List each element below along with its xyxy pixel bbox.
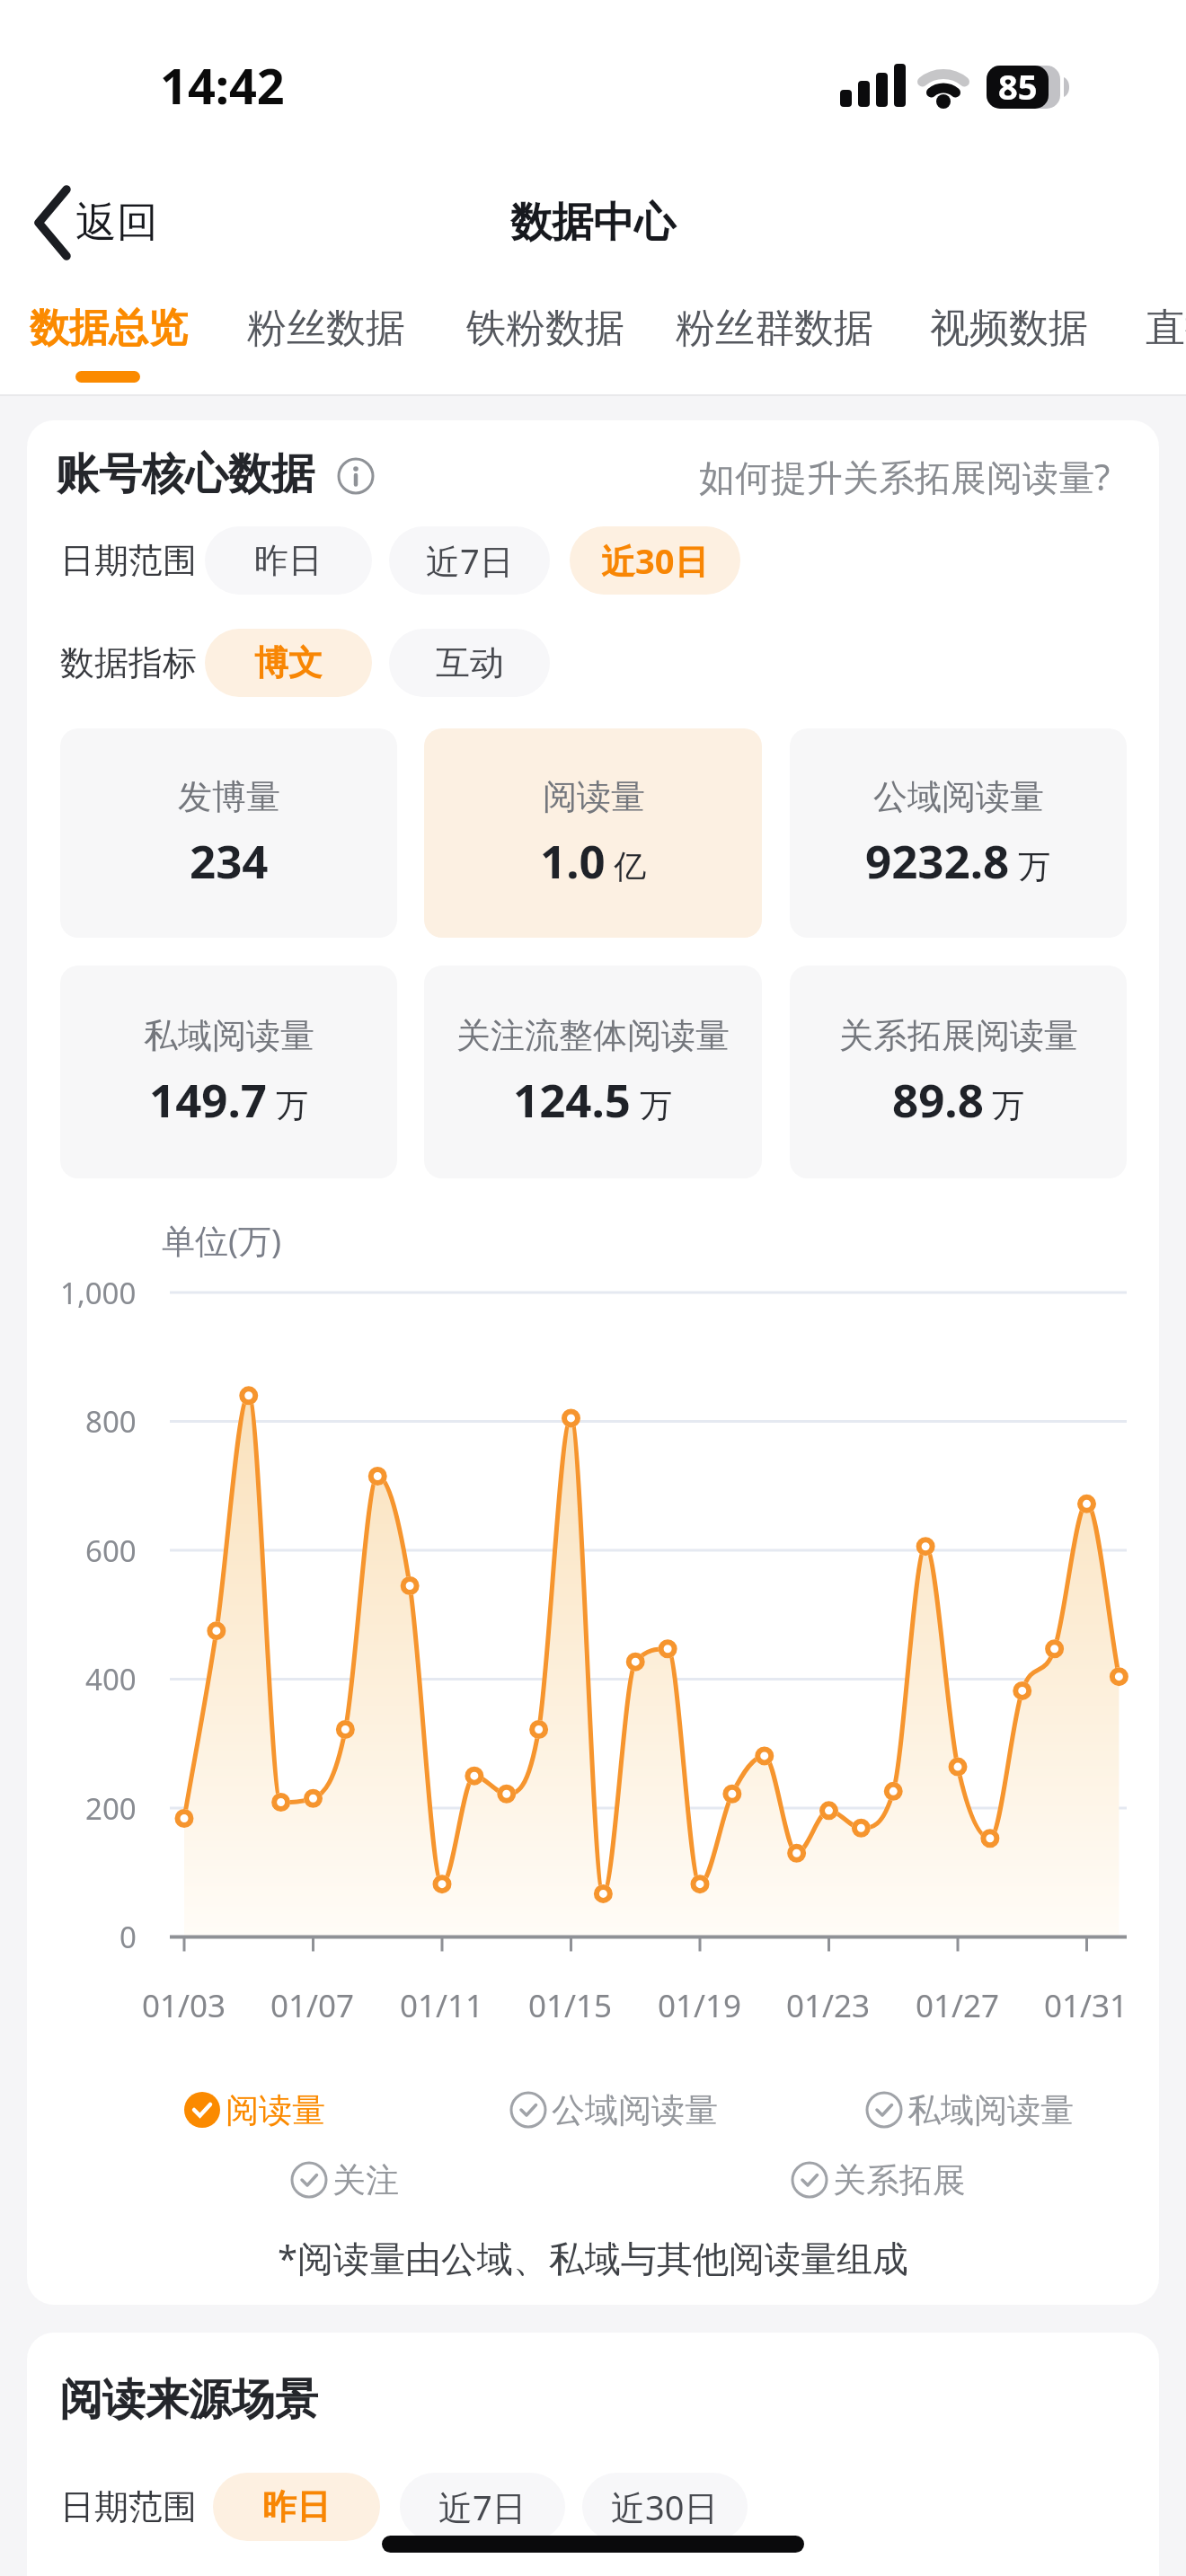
staticText: 89.8 <box>892 1068 984 1130</box>
staticText: 昨日 <box>262 2485 331 2528</box>
button[interactable]: 近7日 <box>389 526 550 595</box>
staticText: 粉丝群数据 <box>676 304 873 353</box>
staticText: 85 <box>998 63 1038 110</box>
button[interactable]: 发博量 <box>60 728 397 938</box>
button[interactable]: 粉丝数据 <box>238 296 396 368</box>
staticText: 私域阅读量 <box>907 2089 1074 2131</box>
button[interactable]: 互动 <box>389 629 550 697</box>
button[interactable]: 私域阅读量 <box>60 966 397 1178</box>
staticText: 数据中心 <box>510 197 676 249</box>
staticText: 01/11 <box>400 1984 484 2027</box>
staticText: 如何提升关系拓展阅读量? <box>699 452 1111 501</box>
button[interactable] <box>27 182 162 263</box>
staticText: 近7日 <box>426 537 514 584</box>
button[interactable]: 直播数据 <box>1137 296 1186 368</box>
button[interactable]: 公域阅读量 <box>790 728 1127 938</box>
staticText: 公域阅读量 <box>552 2089 718 2131</box>
staticText: 数据指标 <box>60 641 197 684</box>
staticText: 返回 <box>75 197 158 249</box>
staticText: 近30日 <box>601 537 709 584</box>
staticText: 200 <box>85 1788 137 1829</box>
staticText: 视频数据 <box>930 304 1088 353</box>
staticText: 粉丝数据 <box>247 304 405 353</box>
button[interactable]: 关系拓展 <box>790 2153 966 2207</box>
staticText: 博文 <box>254 641 323 684</box>
staticText: 账号核心数据 <box>56 447 314 501</box>
button[interactable]: 粉丝群数据 <box>667 296 864 368</box>
button[interactable] <box>629 436 1114 516</box>
staticText: 01/03 <box>142 1984 226 2027</box>
button[interactable]: 视频数据 <box>921 296 1079 368</box>
staticText: 日期范围 <box>60 2485 197 2528</box>
staticText: 万 <box>1010 843 1051 887</box>
button[interactable]: 近30日 <box>570 526 740 595</box>
staticText: 124.5 <box>513 1068 632 1130</box>
staticText: 私域阅读量 <box>144 1014 314 1057</box>
staticText: 昨日 <box>254 539 323 582</box>
staticText: 日期范围 <box>60 539 197 582</box>
button[interactable]: 近7日 <box>400 2473 565 2541</box>
staticText: 关注 <box>332 2159 399 2201</box>
staticText: 关系拓展 <box>833 2159 966 2201</box>
staticText: 01/27 <box>916 1984 1000 2027</box>
staticText: 1.0 <box>540 829 606 891</box>
staticText: 800 <box>85 1401 137 1442</box>
button[interactable]: 铁粉数据 <box>457 296 615 368</box>
button[interactable]: 数据总览 <box>21 296 179 368</box>
button[interactable]: 公域阅读量 <box>509 2083 718 2137</box>
button[interactable]: 关注 <box>289 2153 399 2207</box>
staticText: 万 <box>268 1082 309 1126</box>
staticText: 01/19 <box>658 1984 742 2027</box>
staticText: 01/07 <box>270 1984 355 2027</box>
button[interactable]: 博文 <box>205 629 372 697</box>
button[interactable]: 关系拓展阅读量 <box>790 966 1127 1178</box>
staticText: 万 <box>632 1082 673 1126</box>
button[interactable]: 关注流整体阅读量 <box>424 966 762 1178</box>
staticText: 关系拓展阅读量 <box>839 1014 1078 1057</box>
staticText: 14:42 <box>160 52 285 119</box>
staticText: 万 <box>984 1082 1025 1126</box>
button[interactable]: 昨日 <box>205 526 372 595</box>
staticText: 01/23 <box>786 1984 871 2027</box>
staticText: 近7日 <box>438 2483 527 2530</box>
staticText: 数据总览 <box>30 304 188 353</box>
staticText: 234 <box>190 829 269 891</box>
staticText: 直播数据 <box>1146 304 1186 353</box>
staticText: 1,000 <box>60 1273 137 1313</box>
staticText: 亿 <box>606 843 647 887</box>
staticText: 阅读量 <box>226 2089 325 2131</box>
staticText: 01/15 <box>528 1984 613 2027</box>
staticText: 9232.8 <box>865 829 1010 891</box>
button[interactable]: 阅读量 <box>424 728 762 938</box>
staticText: 公域阅读量 <box>873 775 1044 818</box>
button[interactable]: 阅读量 <box>182 2083 325 2137</box>
staticText: 近30日 <box>611 2483 719 2530</box>
staticText: *阅读量由公域、私域与其他阅读量组成 <box>278 2233 909 2282</box>
staticText: 01/31 <box>1044 1984 1128 2027</box>
button[interactable]: 昨日 <box>213 2473 380 2541</box>
staticText: 阅读来源场景 <box>59 2373 318 2427</box>
staticText: 发博量 <box>178 775 280 818</box>
staticText: 0 <box>119 1917 137 1957</box>
button[interactable]: 私域阅读量 <box>864 2083 1074 2137</box>
staticText: 单位(万) <box>162 1217 282 1263</box>
staticText: 阅读量 <box>543 775 645 818</box>
button[interactable]: 近30日 <box>582 2473 748 2541</box>
staticText: 铁粉数据 <box>466 304 624 353</box>
staticText: 149.7 <box>149 1068 268 1130</box>
staticText: 互动 <box>436 641 504 684</box>
staticText: 400 <box>85 1659 137 1699</box>
staticText: 600 <box>85 1531 137 1571</box>
staticText: 关注流整体阅读量 <box>456 1014 730 1057</box>
